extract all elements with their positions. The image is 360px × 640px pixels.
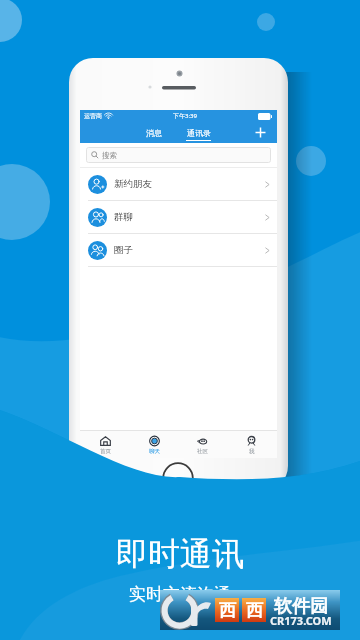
staticText: 消息	[146, 128, 162, 138]
staticText: 群聊	[114, 211, 133, 223]
staticText: 下午3:39	[173, 112, 197, 120]
staticText: 圈子	[114, 244, 133, 256]
staticText: CR173.COM	[270, 613, 332, 628]
staticText: 通讯录	[187, 128, 211, 138]
staticText: 新约朋友	[114, 178, 152, 190]
button[interactable]: 消息	[144, 128, 164, 141]
staticText: 西	[219, 600, 236, 621]
button[interactable]: 我	[229, 434, 274, 455]
button[interactable]: 聊天	[132, 434, 177, 455]
staticText: 运营商	[84, 112, 102, 120]
staticText: 软件园	[274, 595, 328, 618]
button[interactable]: 首页	[83, 434, 128, 455]
staticText: 西	[246, 600, 263, 621]
staticText: 首页	[100, 448, 111, 455]
staticText: 实时交流沟通	[129, 584, 231, 605]
staticText: 搜索	[102, 151, 117, 160]
button[interactable]: 通讯录	[184, 128, 213, 141]
staticText: 即时通讯	[116, 534, 244, 574]
button[interactable]: Add	[254, 126, 267, 139]
staticText: 社区	[197, 448, 208, 455]
button[interactable]: 搜索	[86, 147, 271, 163]
button[interactable]: 社区	[180, 434, 225, 455]
staticText: 我	[249, 448, 255, 455]
button[interactable]: 圈子	[80, 234, 277, 266]
button[interactable]: 群聊	[80, 201, 277, 233]
staticText: 聊天	[149, 448, 160, 455]
button[interactable]: 新约朋友	[80, 168, 277, 200]
